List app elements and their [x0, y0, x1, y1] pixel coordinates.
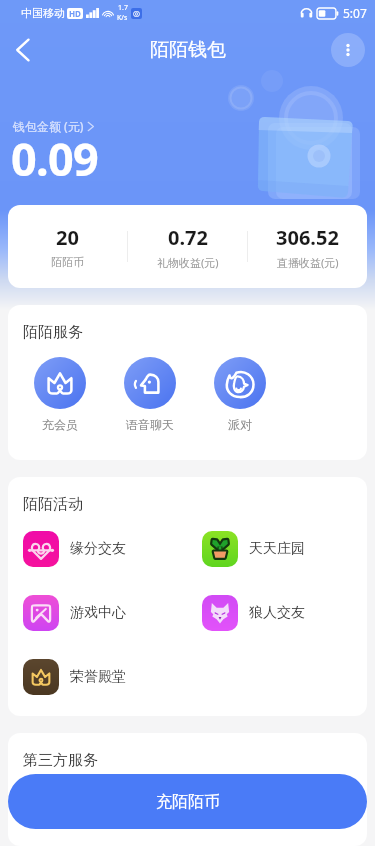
staticText: 钱包金额 (元) — [13, 118, 84, 134]
button[interactable]: 游戏中心 — [23, 595, 187, 631]
staticText: 直播收益(元) — [277, 255, 339, 270]
staticText: 天天庄园 — [249, 540, 305, 558]
staticText: 陌陌钱包 — [150, 38, 226, 62]
staticText: 20 — [56, 224, 79, 251]
staticText: 306.52 — [276, 224, 339, 251]
staticText: K/s — [117, 13, 128, 23]
button[interactable]: 缘分交友 — [23, 531, 187, 567]
button[interactable]: 充会员 — [15, 357, 105, 432]
button[interactable]: 0.72 — [128, 224, 247, 270]
button[interactable]: 20 — [8, 224, 127, 269]
staticText: 充陌陌币 — [156, 792, 220, 812]
button[interactable]: 天天庄园 — [202, 531, 367, 567]
staticText: 0.09 — [11, 128, 99, 189]
staticText: 陌陌服务 — [23, 323, 83, 342]
staticText: 缘分交友 — [70, 540, 126, 558]
staticText: 陌陌币 — [51, 255, 84, 269]
staticText: 荣誉殿堂 — [70, 668, 126, 686]
button[interactable]: 派对 — [195, 357, 285, 432]
button[interactable]: 荣誉殿堂 — [23, 659, 187, 695]
staticText: HD — [69, 8, 81, 19]
staticText: 第三方服务 — [23, 751, 98, 770]
button[interactable]: 语音聊天 — [105, 357, 195, 432]
staticText: 礼物收益(元) — [157, 255, 219, 270]
staticText: 语音聊天 — [126, 417, 174, 432]
staticText: 1.7 — [118, 3, 128, 13]
button[interactable]: 充陌陌币 — [8, 774, 367, 829]
staticText: 5:07 — [343, 5, 367, 21]
staticText: 中国移动 — [21, 6, 65, 20]
staticText: 陌陌活动 — [23, 495, 83, 514]
button[interactable]: More options — [331, 33, 365, 67]
staticText: 充会员 — [42, 417, 78, 432]
button[interactable]: 狼人交友 — [202, 595, 367, 631]
staticText: 0.72 — [168, 224, 208, 251]
staticText: 狼人交友 — [249, 604, 305, 622]
button[interactable]: 306.52 — [248, 224, 367, 270]
button[interactable]: 钱包金额 (元) — [13, 118, 95, 134]
staticText: 派对 — [228, 417, 252, 432]
button[interactable]: Back — [2, 29, 44, 71]
staticText: ◎ — [133, 9, 140, 18]
staticText: 游戏中心 — [70, 604, 126, 622]
